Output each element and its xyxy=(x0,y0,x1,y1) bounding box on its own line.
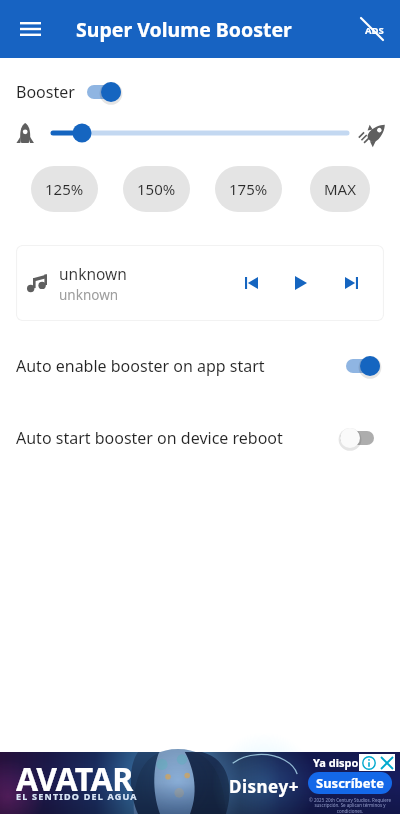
button[interactable]: Next xyxy=(334,266,368,300)
button[interactable]: unknown xyxy=(16,245,384,321)
staticText: ADS xyxy=(365,24,384,37)
staticText: 150% xyxy=(137,179,176,199)
staticText: EL SENTIDO DEL AGUA xyxy=(16,790,138,802)
staticText: AVATAR xyxy=(16,757,133,801)
button[interactable]: Auto start booster on device reboot xyxy=(0,402,400,474)
staticText: Disney+ xyxy=(229,775,299,798)
button[interactable]: Remove ads xyxy=(350,7,394,51)
button[interactable]: Suscríbete xyxy=(308,772,392,794)
button[interactable]: 150% xyxy=(123,166,190,212)
staticText: 175% xyxy=(229,179,268,199)
staticText: Booster xyxy=(16,81,75,103)
button[interactable]: Auto enable booster on app start xyxy=(0,330,400,402)
button[interactable]: 175% xyxy=(215,166,282,212)
staticText: MAX xyxy=(324,179,356,199)
staticText: © 2025 20th Century Studios. Requiere su… xyxy=(302,797,398,814)
button[interactable]: AVATAR xyxy=(0,752,400,814)
staticText: Auto enable booster on app start xyxy=(16,355,265,377)
button[interactable]: Previous xyxy=(234,266,268,300)
staticText: Suscríbete xyxy=(316,774,384,792)
button[interactable]: Menu xyxy=(8,7,52,51)
button[interactable]: Play xyxy=(284,266,318,300)
button[interactable]: 125% xyxy=(31,166,98,212)
button[interactable]: Close ad xyxy=(379,754,395,771)
staticText: unknown xyxy=(59,263,127,284)
button[interactable]: Ad info xyxy=(359,754,379,771)
staticText: Super Volume Booster xyxy=(76,16,292,43)
staticText: Ya disponible xyxy=(313,755,386,770)
staticText: 125% xyxy=(45,179,84,199)
button[interactable]: Switch on xyxy=(346,355,380,377)
button[interactable]: Switch off xyxy=(340,427,374,449)
button[interactable]: MAX xyxy=(310,166,370,212)
button[interactable]: Switch on xyxy=(87,81,121,103)
staticText: Auto start booster on device reboot xyxy=(16,427,283,449)
staticText: unknown xyxy=(59,286,119,304)
